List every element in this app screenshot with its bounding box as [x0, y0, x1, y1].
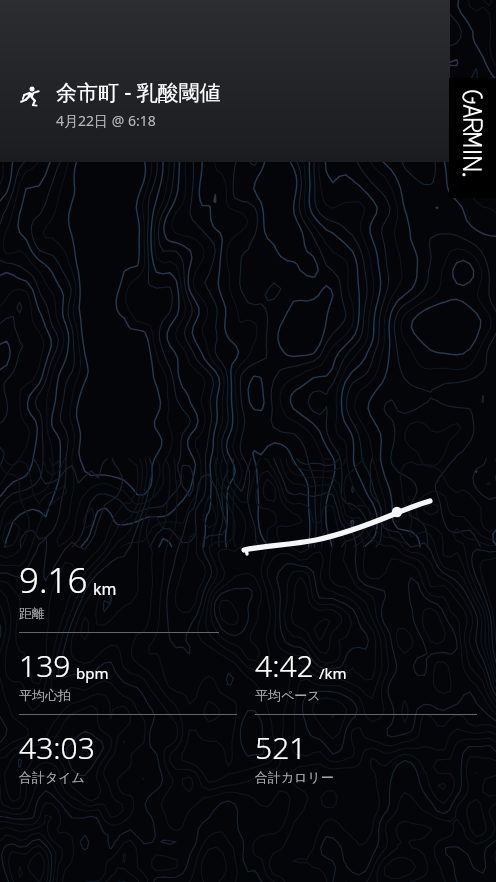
other: Running activity	[18, 84, 42, 108]
staticText: 距離	[19, 605, 45, 621]
button[interactable]: 139	[19, 645, 237, 703]
staticText: 余市町 - 乳酸閾値	[56, 78, 221, 107]
staticText: 平均心拍	[19, 687, 71, 703]
staticText: 521	[255, 727, 307, 768]
staticText: 4月22日 @ 6:18	[56, 111, 156, 130]
staticText: 平均ペース	[255, 687, 321, 703]
staticText: 合計タイム	[19, 769, 85, 785]
button[interactable]: 4:42	[255, 645, 477, 703]
staticText: /km	[319, 663, 347, 683]
staticText: 43:03	[19, 727, 95, 768]
staticText: 4:42	[255, 645, 314, 686]
button[interactable]: Garmin	[449, 78, 496, 198]
staticText: km	[93, 578, 117, 600]
staticText: bpm	[76, 663, 109, 683]
staticText: 139	[19, 645, 71, 686]
button[interactable]: Running activity	[0, 78, 450, 130]
button[interactable]: 521	[255, 727, 477, 785]
button[interactable]: 9.16	[19, 556, 477, 621]
staticText: 合計カロリー	[255, 769, 334, 785]
button[interactable]: 43:03	[19, 727, 237, 785]
staticText: 9.16	[19, 556, 88, 604]
